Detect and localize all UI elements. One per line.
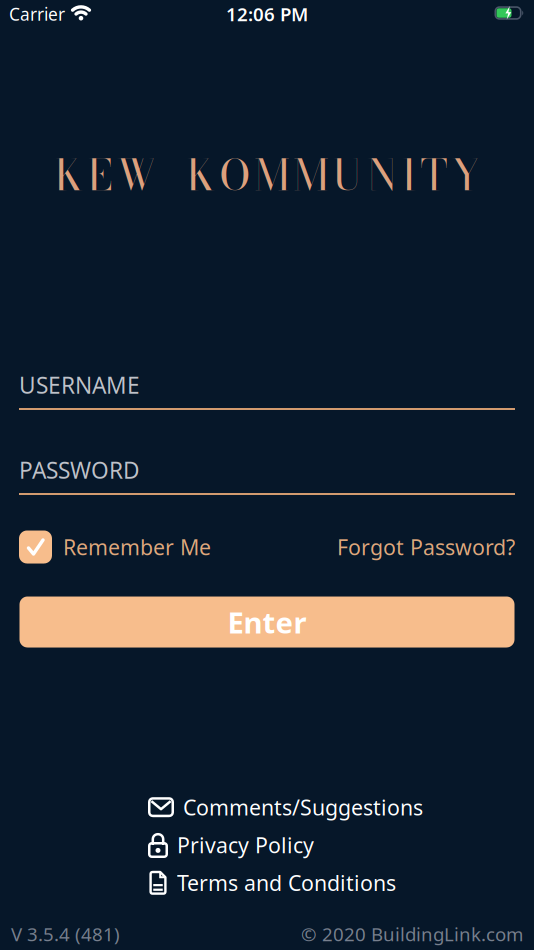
staticText: Carrier [9,2,65,25]
button[interactable]: Remember Me [19,530,211,563]
staticText: Privacy Policy [177,831,314,859]
button[interactable]: Forgot Password? [337,533,515,561]
staticText: K O M M U N I T Y [186,143,481,207]
button[interactable]: Privacy Policy [148,831,314,859]
staticText: © 2020 BuildingLink.com [301,922,523,946]
staticText: 12:06 PM [226,2,308,26]
staticText: Enter [227,602,306,641]
staticText: PASSWORD [19,455,140,485]
staticText: USERNAME [19,370,140,400]
button[interactable]: Terms and Conditions [148,869,396,897]
button[interactable]: Comments/Suggestions [148,793,423,821]
button[interactable]: Enter [19,596,514,647]
staticText: Remember Me [63,533,211,561]
staticText: Terms and Conditions [177,869,396,897]
staticText: Comments/Suggestions [183,793,423,821]
staticText: K E W [54,143,157,207]
staticText: Forgot Password? [337,533,515,561]
staticText: V 3.5.4 (481) [11,922,120,946]
